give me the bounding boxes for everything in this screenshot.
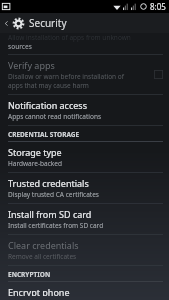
button[interactable]: Trusted credentials (0, 173, 169, 203)
staticText: Security (29, 16, 67, 30)
staticText: Install certificates from SD card (8, 221, 104, 230)
staticText: Apps cannot read notifications (8, 112, 102, 121)
staticText: CREDENTIAL STORAGE (8, 130, 80, 139)
staticText: Disallow or warn before installation of (8, 72, 124, 81)
staticText: apps that may cause harm (8, 81, 89, 90)
staticText: Storage type (8, 146, 62, 158)
staticText: Display trusted CA certificates (8, 190, 99, 199)
staticText: Hardware-backed (8, 159, 62, 168)
button[interactable]: Install from SD card (0, 204, 169, 234)
button[interactable]: Notification access (0, 95, 169, 125)
staticText: Notification access (8, 99, 87, 111)
staticText: Install from SD card (8, 208, 92, 220)
button[interactable]: Clear credentials (0, 235, 169, 265)
staticText: Trusted credentials (8, 177, 89, 189)
button[interactable]: Encrypt phone (0, 282, 169, 300)
staticText: Allow installation of apps from unknown (8, 33, 131, 42)
button[interactable]: Storage type (0, 142, 169, 172)
staticText: Encrypt phone (8, 286, 70, 296)
staticText: ENCRYPTION (8, 270, 51, 279)
staticText: Remove all certificates (8, 252, 77, 261)
button[interactable]: Allow installation of apps from unknown (0, 33, 169, 54)
staticText: 8:05 (150, 1, 166, 12)
staticText: Verify apps (8, 59, 55, 71)
staticText: Clear credentials (8, 239, 79, 251)
button[interactable]: Navigate up, Security (0, 13, 169, 33)
staticText: sources (8, 42, 32, 51)
button[interactable]: Verify apps (0, 55, 169, 94)
